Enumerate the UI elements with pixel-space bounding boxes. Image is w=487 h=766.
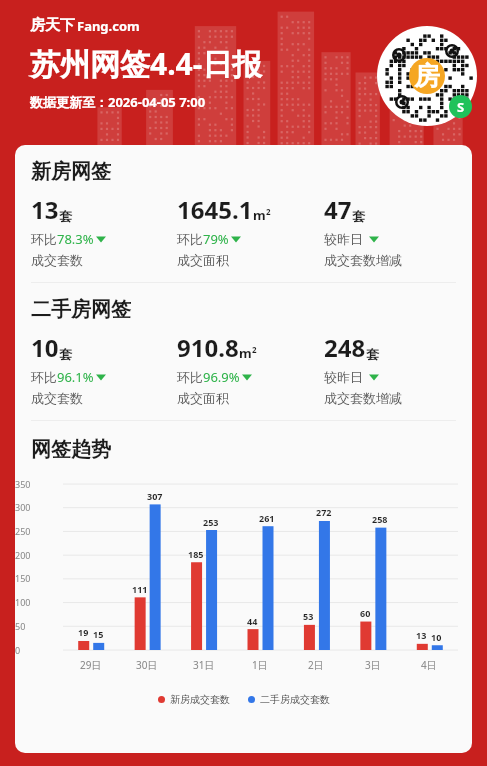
staticText: 环比: [31, 231, 57, 247]
button[interactable]: 910.8: [177, 331, 324, 406]
button[interactable]: 1645.1: [177, 193, 324, 268]
staticText: 2: [266, 206, 271, 217]
staticText: m: [239, 344, 252, 362]
staticText: 60: [360, 607, 371, 619]
staticText: 96.1%: [57, 368, 94, 386]
staticText: 套: [352, 208, 365, 224]
staticText: 13: [31, 193, 59, 226]
staticText: 79%: [203, 230, 229, 248]
staticText: 成交套数增减: [324, 252, 402, 268]
staticText: 31日: [193, 658, 215, 672]
staticText: 10: [31, 331, 59, 364]
button[interactable]: 新房成交套数: [158, 693, 230, 706]
staticText: 环比: [177, 231, 203, 247]
staticText: 15: [93, 628, 104, 640]
staticText: 300: [15, 501, 55, 513]
staticText: 套: [59, 208, 72, 224]
staticText: 成交套数: [31, 390, 83, 406]
staticText: 111: [132, 583, 148, 595]
staticText: 200: [15, 549, 55, 561]
staticText: 96.9%: [203, 368, 240, 386]
staticText: 较昨日: [324, 368, 367, 386]
staticText: S: [457, 98, 465, 116]
staticText: 成交套数增减: [324, 390, 402, 406]
button[interactable]: 10: [31, 331, 177, 406]
staticText: 二手房网签: [31, 297, 131, 322]
staticText: 新房成交套数: [170, 693, 230, 706]
staticText: 环比: [177, 369, 203, 385]
staticText: 套: [59, 346, 72, 362]
button[interactable]: 扫码关注二维码: [377, 26, 477, 126]
staticText: 成交面积: [177, 252, 229, 268]
staticText: 1日: [252, 658, 268, 672]
staticText: 50: [15, 620, 55, 632]
staticText: 网签趋势: [31, 437, 111, 462]
staticText: 19: [78, 626, 89, 638]
staticText: 910.8: [177, 331, 239, 364]
button[interactable]: 248: [324, 331, 464, 406]
staticText: 44: [247, 615, 258, 627]
staticText: 253: [203, 516, 219, 528]
staticText: 185: [188, 548, 204, 560]
staticText: 47: [324, 193, 352, 226]
staticText: 新房网签: [31, 159, 111, 184]
staticText: 248: [324, 331, 366, 364]
staticText: 150: [15, 572, 55, 584]
staticText: 3日: [365, 658, 381, 672]
staticText: 套: [366, 346, 379, 362]
staticText: m: [253, 206, 266, 224]
staticText: 较昨日: [324, 230, 367, 248]
staticText: 成交套数: [31, 252, 83, 268]
button[interactable]: 13: [31, 193, 177, 268]
staticText: 二手房成交套数: [260, 693, 330, 706]
button[interactable]: 47: [324, 193, 464, 268]
staticText: 4日: [421, 658, 437, 672]
staticText: 258: [372, 513, 388, 525]
staticText: 272: [316, 506, 332, 518]
staticText: 环比: [31, 369, 57, 385]
staticText: 成交面积: [177, 390, 229, 406]
staticText: 0: [15, 644, 55, 656]
staticText: 30日: [136, 658, 158, 672]
button[interactable]: 二手房成交套数: [248, 693, 330, 706]
staticText: 1645.1: [177, 193, 253, 226]
staticText: 250: [15, 525, 55, 537]
staticText: 数据更新至：2026-04-05 7:00: [30, 93, 206, 111]
staticText: 2: [252, 344, 257, 355]
staticText: Fang.com: [77, 17, 140, 35]
staticText: 房天下: [30, 16, 75, 35]
staticText: 261: [259, 512, 275, 524]
staticText: 29日: [80, 658, 102, 672]
staticText: 苏州网签4.4-日报: [30, 43, 263, 84]
staticText: 10: [431, 631, 442, 643]
staticText: 2日: [308, 658, 324, 672]
staticText: 307: [147, 490, 163, 502]
staticText: 53: [303, 610, 314, 622]
staticText: 350: [15, 478, 55, 490]
staticText: 78.3%: [57, 230, 94, 248]
staticText: 房: [414, 60, 440, 93]
staticText: 100: [15, 596, 55, 608]
staticText: 13: [416, 629, 427, 641]
